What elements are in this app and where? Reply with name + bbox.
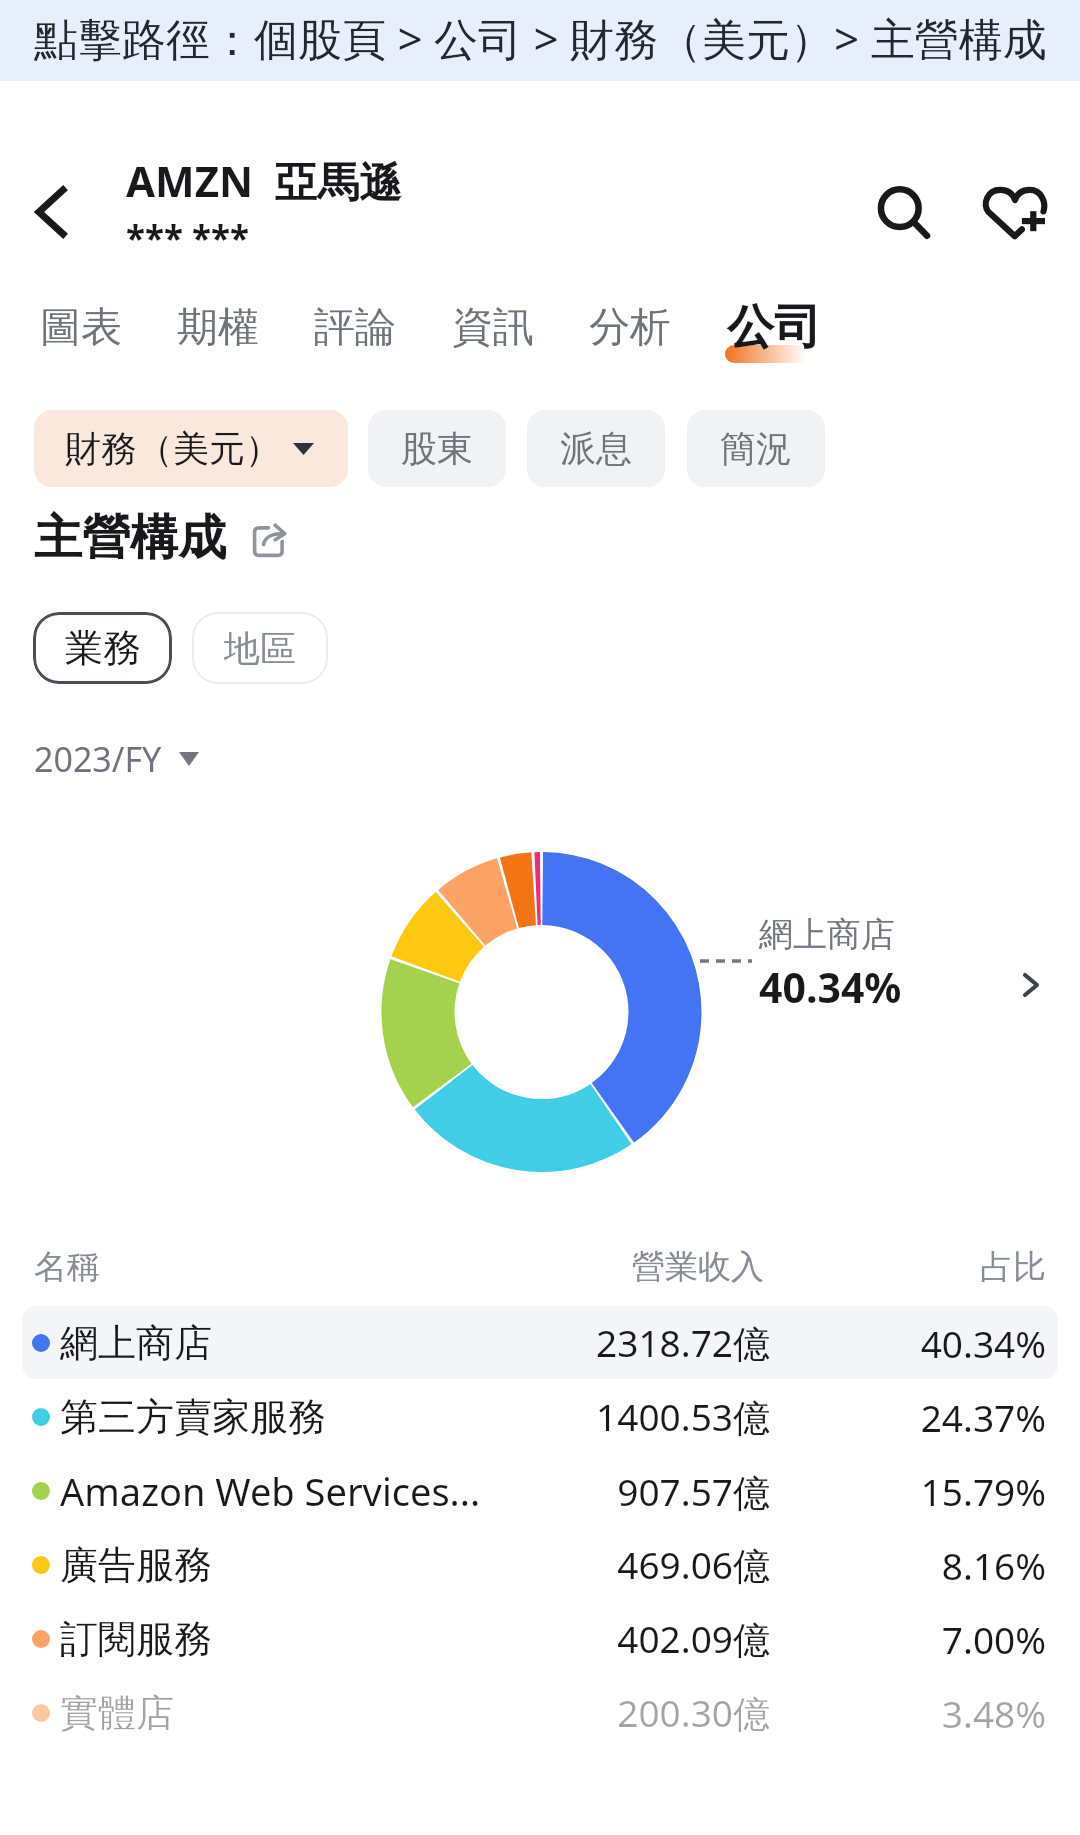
- button[interactable]: 評論: [302, 292, 408, 364]
- staticText: 3.48%: [770, 1688, 1046, 1738]
- staticText: 訂閱服務: [60, 1615, 486, 1663]
- staticText: 點擊路徑：個股頁 > 公司 > 財務（美元）> 主營構成: [34, 8, 1047, 68]
- staticText: 2318.72億: [486, 1317, 770, 1368]
- staticText: 7.00%: [770, 1614, 1046, 1664]
- staticText: 公司: [727, 298, 821, 357]
- staticText: 第三方賣家服務: [60, 1393, 486, 1441]
- staticText: 股東: [401, 426, 473, 471]
- staticText: 15.79%: [770, 1466, 1046, 1516]
- button[interactable]: 股東: [368, 410, 506, 487]
- staticText: 主營構成: [34, 508, 226, 568]
- staticText: 占比: [764, 1246, 1046, 1288]
- button[interactable]: 廣告服務: [22, 1528, 1058, 1601]
- staticText: 2023/FY: [34, 736, 162, 782]
- button[interactable]: 分析: [577, 292, 683, 364]
- staticText: 200.30億: [486, 1687, 770, 1738]
- staticText: 地區: [224, 626, 296, 671]
- staticText: 8.16%: [770, 1540, 1046, 1590]
- button[interactable]: 公司: [715, 286, 833, 363]
- button[interactable]: Search: [859, 168, 951, 260]
- staticText: 評論: [314, 302, 396, 354]
- staticText: 24.37%: [770, 1392, 1046, 1442]
- button[interactable]: Add to watchlist: [969, 167, 1061, 259]
- staticText: 圖表: [40, 302, 122, 354]
- staticText: Amazon Web Services...: [60, 1465, 486, 1517]
- staticText: 業務: [65, 624, 141, 672]
- staticText: AMZN 亞馬遜: [126, 152, 401, 209]
- button[interactable]: Back: [7, 168, 95, 256]
- staticText: 財務（美元）: [65, 426, 281, 471]
- button[interactable]: 訂閱服務: [22, 1602, 1058, 1675]
- staticText: 40.34%: [759, 959, 902, 1015]
- button[interactable]: 期權: [165, 292, 271, 364]
- staticText: 網上商店: [60, 1319, 486, 1367]
- button[interactable]: 2023/FY: [34, 736, 199, 782]
- button[interactable]: 派息: [527, 410, 665, 487]
- staticText: 派息: [560, 426, 632, 471]
- button[interactable]: 第三方賣家服務: [22, 1380, 1058, 1453]
- staticText: 營業收入: [464, 1246, 764, 1288]
- staticText: 40.34%: [770, 1318, 1046, 1368]
- staticText: *** ***: [126, 214, 249, 262]
- button[interactable]: 地區: [192, 612, 328, 684]
- staticText: 名稱: [34, 1246, 464, 1288]
- staticText: 分析: [589, 302, 671, 354]
- staticText: 簡況: [720, 426, 792, 471]
- button[interactable]: 簡況: [687, 410, 825, 487]
- staticText: 廣告服務: [60, 1541, 486, 1589]
- staticText: 469.06億: [486, 1539, 770, 1590]
- button[interactable]: 主營構成: [34, 508, 226, 568]
- button[interactable]: 資訊: [440, 292, 546, 364]
- staticText: 907.57億: [486, 1466, 770, 1517]
- button[interactable]: 實體店: [22, 1676, 1058, 1749]
- button[interactable]: Details: [991, 945, 1071, 1025]
- staticText: 期權: [177, 302, 259, 354]
- staticText: 網上商店: [759, 913, 895, 956]
- staticText: 402.09億: [486, 1613, 770, 1664]
- button[interactable]: Amazon Web Services...: [22, 1454, 1058, 1527]
- staticText: 資訊: [452, 302, 534, 354]
- button[interactable]: Share: [254, 524, 283, 553]
- staticText: 1400.53億: [486, 1391, 770, 1442]
- button[interactable]: 業務: [33, 612, 172, 684]
- staticText: 實體店: [60, 1689, 486, 1737]
- button[interactable]: 財務（美元）: [34, 410, 348, 487]
- button[interactable]: 網上商店: [22, 1306, 1058, 1379]
- button[interactable]: 圖表: [28, 292, 134, 364]
